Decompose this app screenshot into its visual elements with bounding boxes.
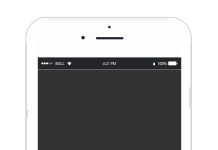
staticText: 4:21 PM	[102, 61, 116, 66]
staticText: 100%	[157, 61, 166, 66]
staticText: BELL	[55, 61, 64, 66]
